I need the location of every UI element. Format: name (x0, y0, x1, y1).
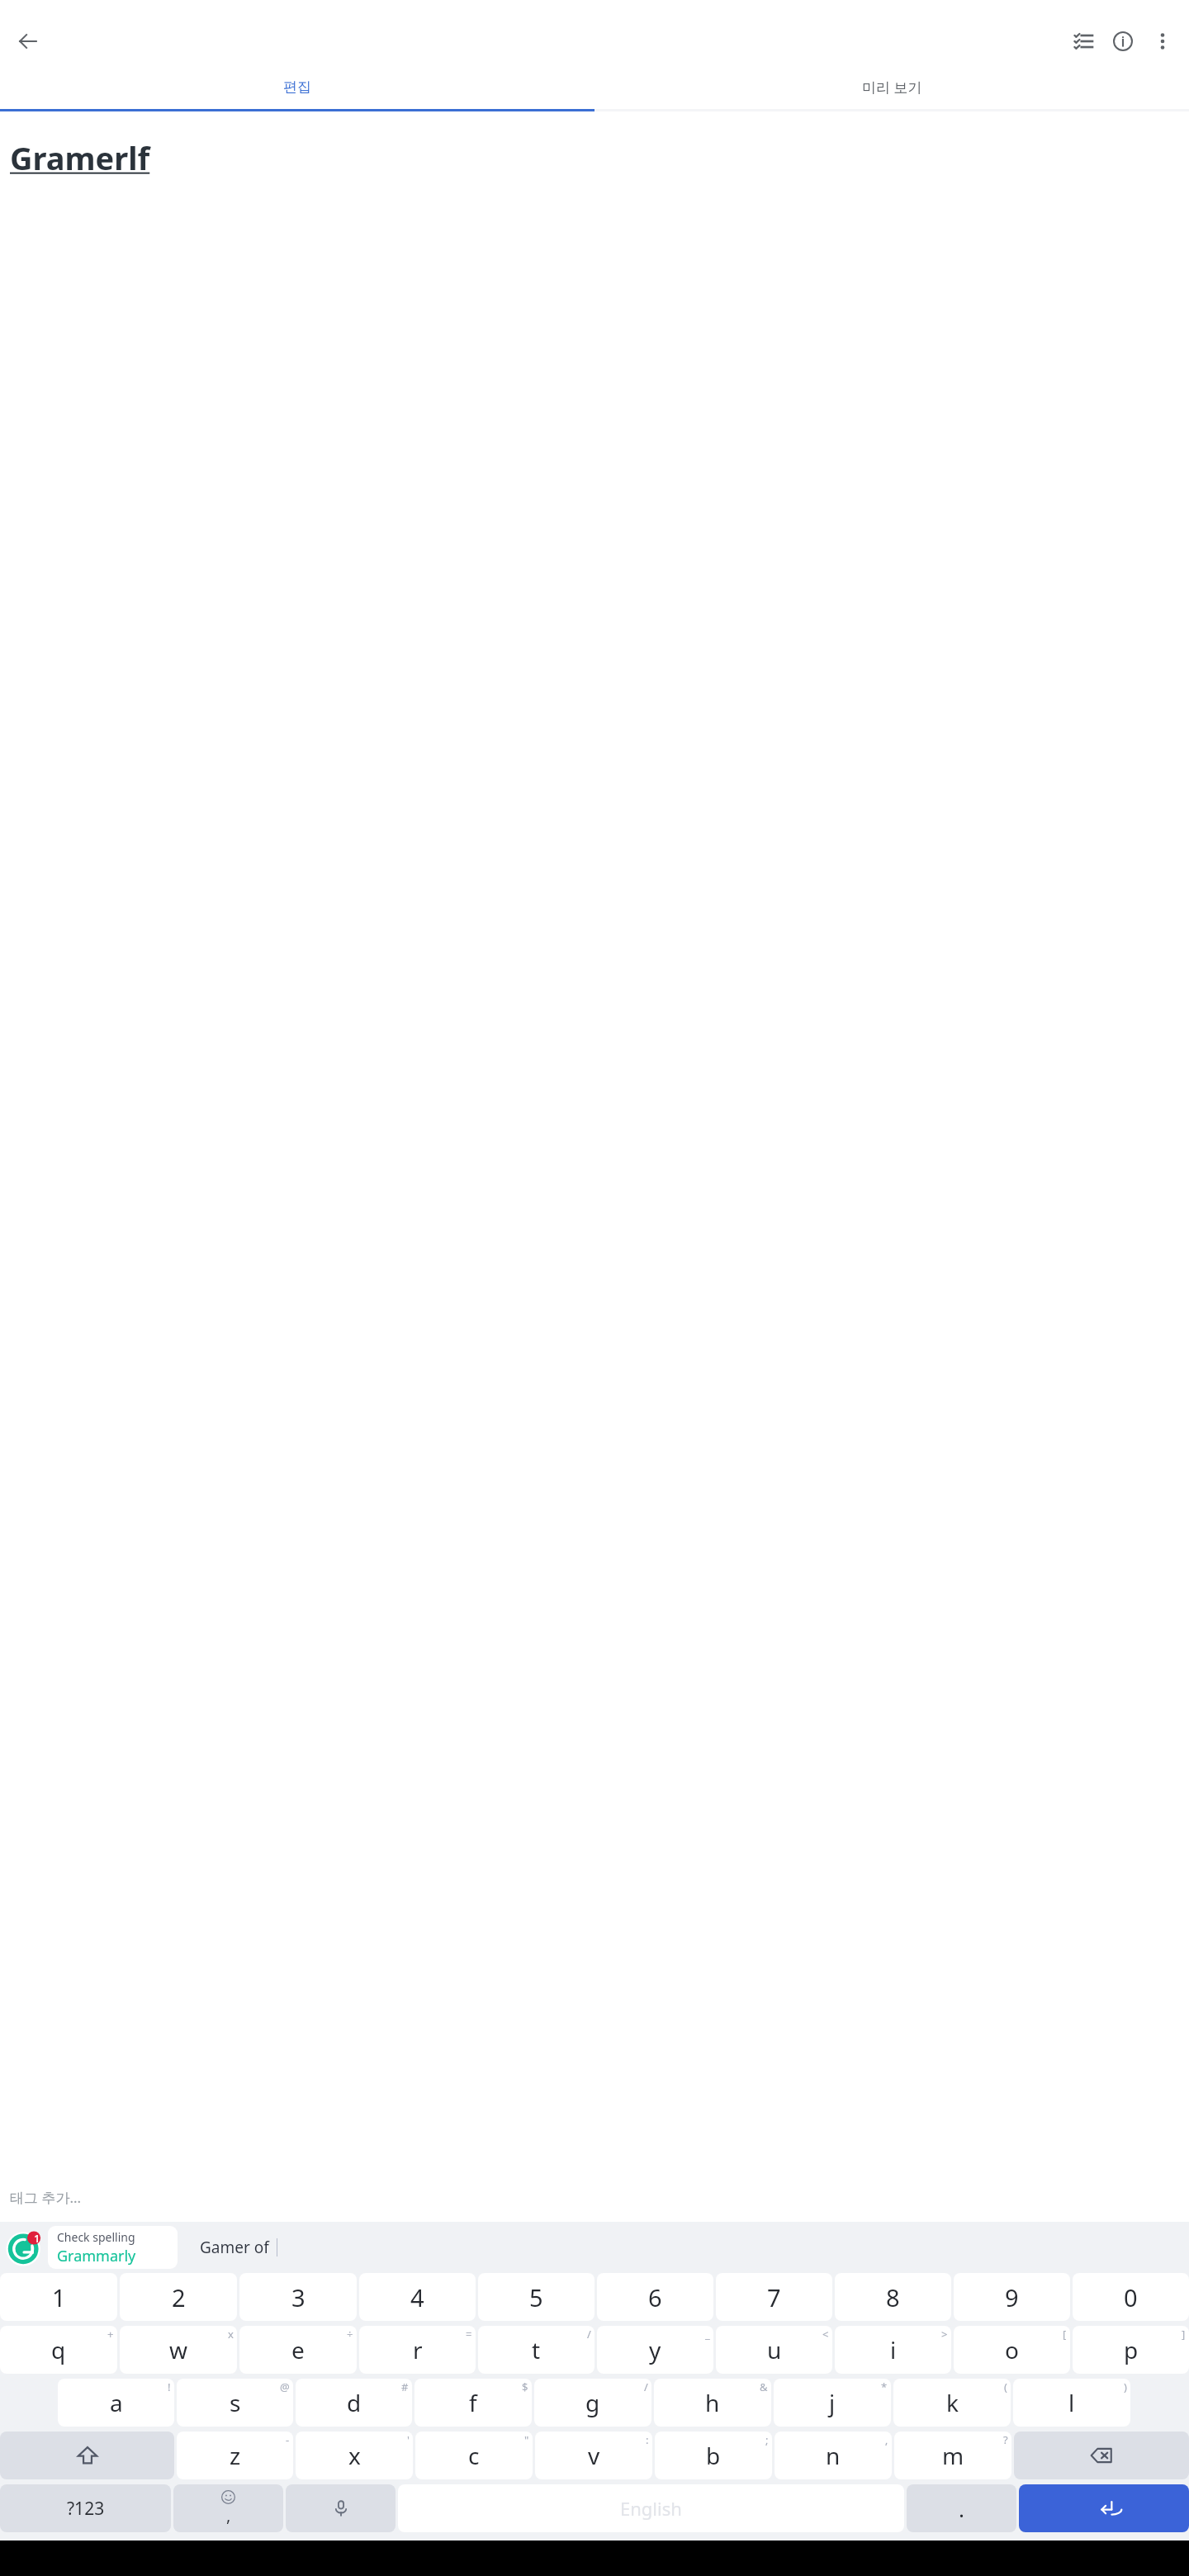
staticText: 7 (767, 2281, 781, 2313)
button[interactable]: Checklist (1063, 21, 1103, 61)
staticText: e (291, 2334, 305, 2365)
button[interactable]: 2 (120, 2273, 237, 2321)
staticText: Gramerlf (10, 136, 150, 179)
button[interactable]: o (954, 2326, 1070, 2374)
button[interactable]: Shift (0, 2432, 174, 2479)
button[interactable]: 미리 보기 (594, 64, 1189, 109)
staticText: 1 (34, 2231, 40, 2246)
staticText: $ (522, 2379, 528, 2394)
staticText: g (585, 2387, 600, 2418)
button[interactable]: e (239, 2326, 357, 2374)
button[interactable]: t (478, 2326, 594, 2374)
staticText: , (226, 2504, 231, 2526)
staticText: y (649, 2334, 661, 2365)
staticText: " (524, 2432, 529, 2447)
staticText: ] (1182, 2327, 1186, 2342)
button[interactable]: s (177, 2379, 293, 2427)
button[interactable]: 1 (0, 2273, 117, 2321)
button[interactable]: v (535, 2432, 652, 2479)
button[interactable]: Voice input (286, 2484, 396, 2532)
button[interactable]: 5 (478, 2273, 594, 2321)
staticText: ‚ (885, 2432, 888, 2447)
button[interactable]: 3 (239, 2273, 357, 2321)
button[interactable]: i (835, 2326, 951, 2374)
button[interactable]: Grammarly (5, 2228, 45, 2267)
button[interactable]: Emoji (173, 2484, 283, 2532)
staticText: 8 (886, 2281, 900, 2313)
button[interactable]: x (296, 2432, 413, 2479)
staticText: m (942, 2440, 964, 2471)
button[interactable]: Back (8, 21, 48, 61)
staticText: 3 (291, 2281, 306, 2313)
button[interactable]: . (907, 2484, 1016, 2532)
staticText: . (959, 2494, 964, 2523)
staticText: 9 (1005, 2281, 1019, 2313)
button[interactable]: 4 (359, 2273, 476, 2321)
staticText: ! (168, 2379, 171, 2394)
staticText: z (230, 2440, 241, 2471)
staticText: * (881, 2379, 888, 2394)
button[interactable]: 9 (954, 2273, 1070, 2321)
button[interactable]: c (415, 2432, 533, 2479)
staticText: u (767, 2334, 782, 2365)
staticText: Gamer of (200, 2237, 269, 2258)
staticText: 5 (529, 2281, 543, 2313)
button[interactable]: More options (1143, 21, 1182, 61)
staticText: ?123 (67, 2497, 105, 2521)
button[interactable]: Check spelling (48, 2226, 178, 2269)
staticText: & (760, 2379, 768, 2394)
button[interactable]: b (655, 2432, 772, 2479)
button[interactable]: 7 (716, 2273, 832, 2321)
staticText: n (826, 2440, 841, 2471)
button[interactable]: 편집 (0, 64, 594, 109)
button[interactable]: Info (1103, 21, 1143, 61)
staticText: 편집 (283, 78, 311, 96)
staticText: h (705, 2387, 720, 2418)
button[interactable]: z (177, 2432, 293, 2479)
button[interactable]: a (58, 2379, 174, 2427)
button[interactable]: r (359, 2326, 476, 2374)
staticText: 0 (1124, 2281, 1138, 2313)
staticText: x (348, 2440, 361, 2471)
staticText: q (51, 2334, 66, 2365)
staticText: w (169, 2334, 188, 2365)
staticText: / (644, 2379, 648, 2394)
staticText: Grammarly (57, 2246, 136, 2266)
button[interactable]: j (774, 2379, 891, 2427)
button[interactable]: 0 (1073, 2273, 1189, 2321)
staticText: @ (280, 2379, 290, 2394)
button[interactable]: Space (398, 2484, 904, 2532)
button[interactable]: f (414, 2379, 532, 2427)
staticText: [ (1063, 2327, 1067, 2342)
button[interactable]: w (120, 2326, 237, 2374)
button[interactable]: u (716, 2326, 832, 2374)
staticText: Check spelling (57, 2229, 135, 2245)
staticText: x (228, 2327, 234, 2342)
button[interactable]: y (597, 2326, 713, 2374)
staticText: c (468, 2440, 480, 2471)
staticText: d (347, 2387, 362, 2418)
button[interactable]: g (534, 2379, 651, 2427)
staticText: ' (407, 2432, 410, 2447)
button[interactable]: l (1013, 2379, 1130, 2427)
button[interactable]: Enter (1019, 2484, 1189, 2532)
button[interactable]: Backspace (1014, 2432, 1189, 2479)
button[interactable]: m (894, 2432, 1011, 2479)
staticText: v (588, 2440, 600, 2471)
button[interactable]: 8 (835, 2273, 951, 2321)
button[interactable]: k (893, 2379, 1011, 2427)
staticText: / (587, 2327, 591, 2342)
staticText: 4 (410, 2281, 424, 2313)
staticText: ( (1004, 2379, 1007, 2394)
button[interactable]: d (296, 2379, 412, 2427)
button[interactable]: ?123 (0, 2484, 171, 2532)
button[interactable]: p (1073, 2326, 1189, 2374)
button[interactable]: Gamer of (192, 2222, 277, 2273)
button[interactable]: h (654, 2379, 771, 2427)
button[interactable]: n (775, 2432, 892, 2479)
staticText: k (946, 2387, 959, 2418)
staticText: : (646, 2432, 649, 2447)
button[interactable]: 6 (597, 2273, 713, 2321)
staticText: ; (765, 2432, 769, 2447)
button[interactable]: q (0, 2326, 117, 2374)
